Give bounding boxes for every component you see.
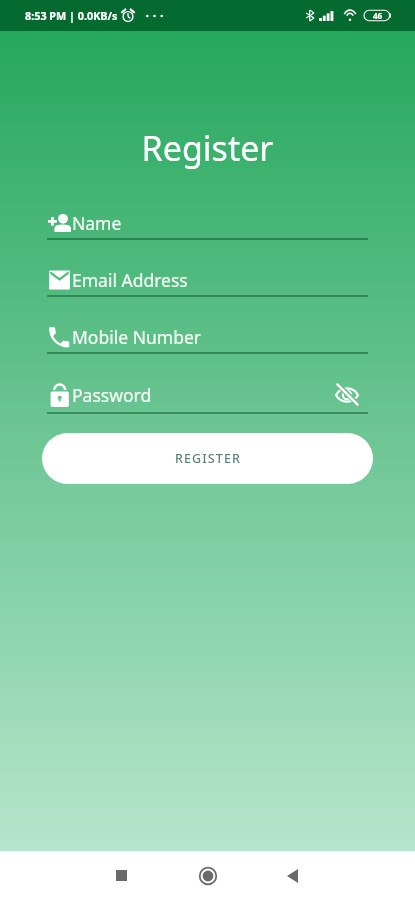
button[interactable]: REGISTER [42,433,373,484]
button[interactable]: Email Address [47,264,368,296]
button[interactable]: Back [269,852,316,899]
staticText: Name [72,211,122,235]
staticText: Email Address [72,268,188,292]
staticText: REGISTER [175,450,241,467]
button[interactable]: Show password [335,383,359,407]
button[interactable]: Password [47,379,368,411]
button[interactable]: Home [184,852,231,899]
staticText: 8:53 PM | 0.0KB/s [25,8,118,23]
button[interactable]: Recents [98,852,145,899]
staticText: Mobile Number [72,325,202,349]
button[interactable]: Name [47,207,368,239]
staticText: 46 [373,10,383,21]
staticText: Password [72,383,152,407]
button[interactable]: Mobile Number [47,321,368,353]
staticText: Register [0,125,415,171]
